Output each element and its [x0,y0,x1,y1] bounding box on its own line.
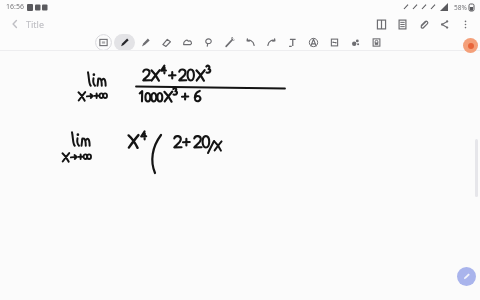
button[interactable]: Back [4,14,26,34]
button[interactable]: Attach [413,14,434,34]
button[interactable]: Split view [371,14,392,34]
button[interactable]: Lock [366,34,387,51]
button[interactable]: Share [434,14,455,34]
button[interactable]: Pages [392,14,413,34]
button[interactable]: Edit [457,267,476,286]
button[interactable]: Magic wand [219,34,240,51]
staticText: 16:56 [6,2,24,12]
button[interactable]: Eraser [156,34,177,51]
button[interactable]: Lasso [198,34,219,51]
button[interactable]: Highlighter [135,34,156,51]
button[interactable]: Redo [261,34,282,51]
button[interactable]: More options [455,14,476,34]
button[interactable]: Select [93,34,114,51]
button[interactable]: Shapes [177,34,198,51]
button[interactable]: Resize [324,34,345,51]
button[interactable]: Text style [303,34,324,51]
button[interactable]: Pen [114,34,135,51]
staticText: 58% [454,3,467,12]
button[interactable]: Insert text [282,34,303,51]
button[interactable]: Colour [345,34,366,51]
staticText: Title [26,18,44,30]
button[interactable]: Undo [240,34,261,51]
button[interactable]: Collaborator [463,38,478,53]
